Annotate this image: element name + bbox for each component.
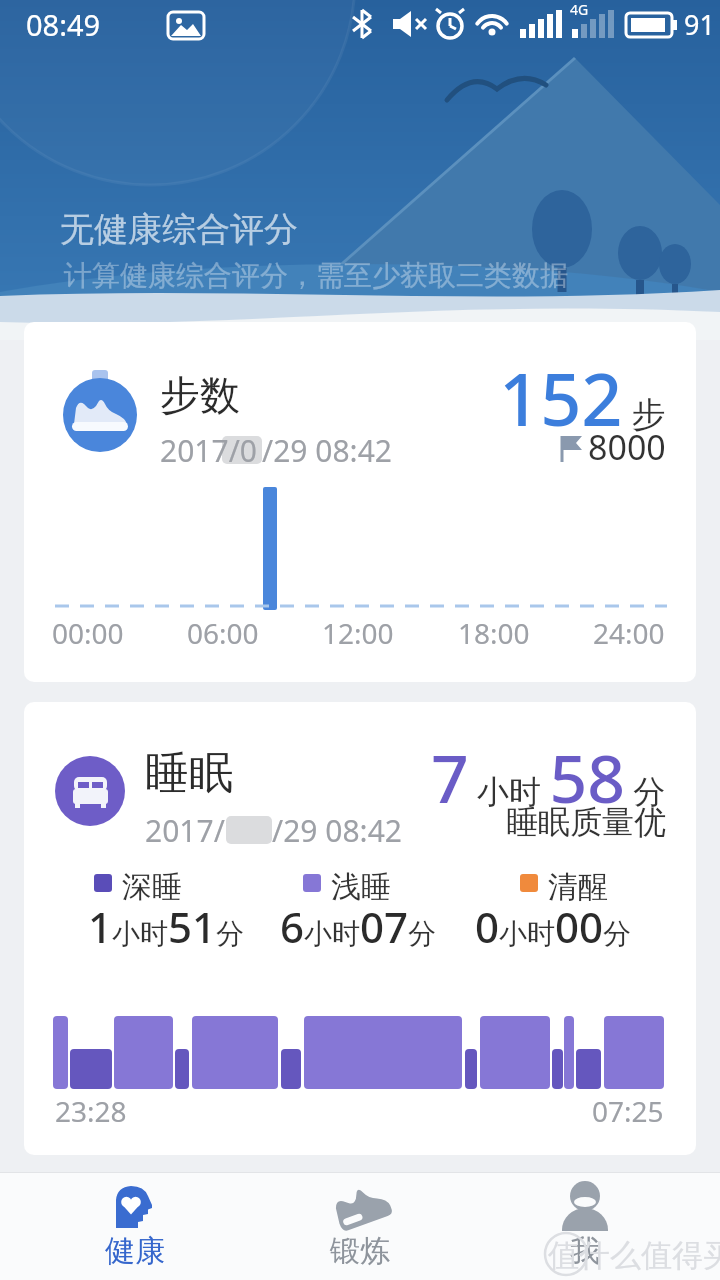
button[interactable]: 我 <box>510 1172 660 1280</box>
staticText: 23:28 <box>55 1092 127 1130</box>
staticText: 06:00 <box>187 614 259 652</box>
staticText: 睡眠 <box>145 746 233 801</box>
staticText: /29 08:42 <box>272 810 402 851</box>
staticText: 91 <box>684 6 715 43</box>
staticText: 12:00 <box>322 614 394 652</box>
staticText: 8000 <box>588 424 666 470</box>
staticText: 24:00 <box>593 614 665 652</box>
staticText: 值什么值得买 <box>548 1236 720 1275</box>
staticText: 18:00 <box>458 614 530 652</box>
staticText: 锻炼 <box>330 1232 390 1270</box>
staticText: 无健康综合评分 <box>60 208 298 251</box>
staticText: 2017/ <box>145 810 225 851</box>
button[interactable]: 步数 <box>24 322 696 682</box>
staticText: 1小时51分 <box>88 898 245 955</box>
staticText: 浅睡 <box>331 868 391 906</box>
staticText: 计算健康综合评分，需至少获取三类数据 <box>64 258 568 293</box>
staticText: 00:00 <box>52 614 124 652</box>
staticText: 7 小时 58 分 <box>431 732 666 822</box>
staticText: 4G <box>570 0 589 19</box>
staticText: 07:25 <box>592 1092 664 1130</box>
staticText: 清醒 <box>548 868 608 906</box>
button[interactable]: 锻炼 <box>285 1172 435 1280</box>
staticText: 2017/0 <box>160 430 257 471</box>
staticText: 152 步 <box>499 349 666 447</box>
staticText: 08:49 <box>26 5 101 44</box>
staticText: /29 08:42 <box>262 430 392 471</box>
staticText: 0小时00分 <box>475 898 632 955</box>
staticText: 步数 <box>160 370 240 420</box>
button[interactable]: 睡眠 <box>24 702 696 1155</box>
staticText: 6小时07分 <box>280 898 437 955</box>
button[interactable]: 健康 <box>60 1172 210 1280</box>
staticText: 睡眠质量优 <box>506 802 666 842</box>
staticText: 深睡 <box>122 868 182 906</box>
staticText: 我 <box>570 1232 600 1270</box>
staticText: 健康 <box>105 1232 165 1270</box>
